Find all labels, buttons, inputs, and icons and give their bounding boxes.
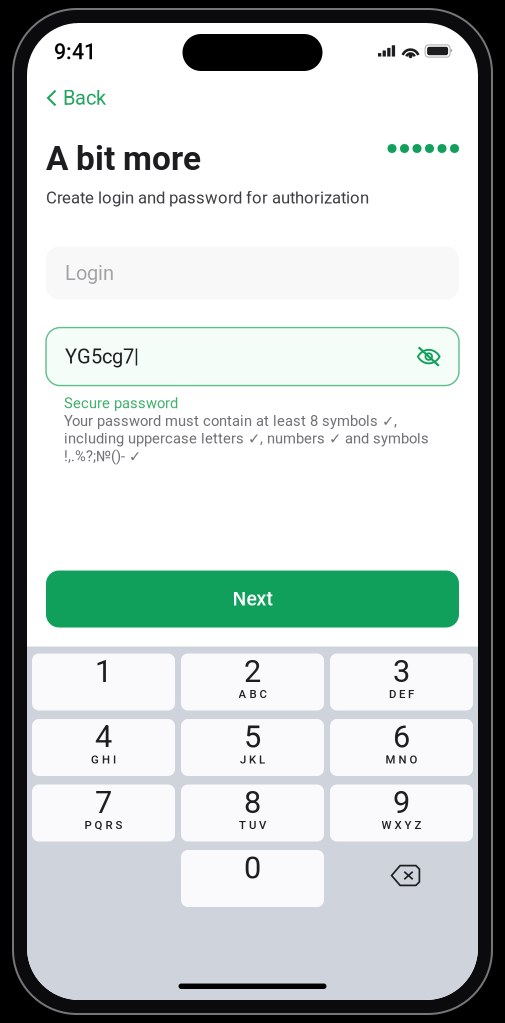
button[interactable]: Delete <box>330 850 473 907</box>
staticText: 7 <box>95 784 112 820</box>
staticText: 2 <box>244 653 261 689</box>
staticText: P Q R S <box>84 818 122 832</box>
staticText: Secure password <box>64 395 178 412</box>
button[interactable]: Back <box>27 81 478 115</box>
button[interactable]: Next <box>46 570 459 627</box>
staticText: YG5cg7| <box>65 345 139 368</box>
staticText: 6 <box>393 719 410 755</box>
staticText: 0 <box>244 850 261 886</box>
staticText: A bit more <box>46 139 201 178</box>
button[interactable]: 4 <box>32 719 175 776</box>
button[interactable]: 5 <box>181 719 324 776</box>
staticText: !,.%?;№()- ✓ <box>64 448 141 465</box>
button[interactable]: 3 <box>330 653 473 710</box>
staticText: 1 <box>95 653 112 689</box>
button[interactable]: 7 <box>32 784 175 841</box>
staticText: 5 <box>244 719 261 755</box>
staticText: G H I <box>91 753 116 766</box>
staticText: 4 <box>95 719 112 755</box>
staticText: 3 <box>393 653 410 689</box>
button[interactable]: Show password <box>416 346 441 368</box>
button[interactable]: 1 <box>32 653 175 710</box>
staticText: M N O <box>385 753 417 766</box>
staticText: Login <box>65 261 114 285</box>
staticText: J K L <box>240 753 265 766</box>
staticText: Your password must contain at least 8 sy… <box>64 412 397 429</box>
staticText: 8 <box>244 784 261 820</box>
staticText: Create login and password for authorizat… <box>46 188 369 208</box>
staticText: D E F <box>389 687 414 701</box>
staticText: 9 <box>393 784 410 820</box>
staticText: A B C <box>238 687 266 701</box>
staticText: Next <box>232 588 272 610</box>
staticText: T U V <box>239 818 266 832</box>
button[interactable]: 2 <box>181 653 324 710</box>
button[interactable]: 0 <box>181 850 324 907</box>
button[interactable]: 8 <box>181 784 324 841</box>
staticText: including uppercase letters ✓, numbers ✓… <box>64 430 429 447</box>
button[interactable]: 6 <box>330 719 473 776</box>
staticText: 9:41 <box>54 39 96 64</box>
button[interactable]: 9 <box>330 784 473 841</box>
staticText: Back <box>63 86 106 110</box>
staticText: W X Y Z <box>381 818 421 832</box>
